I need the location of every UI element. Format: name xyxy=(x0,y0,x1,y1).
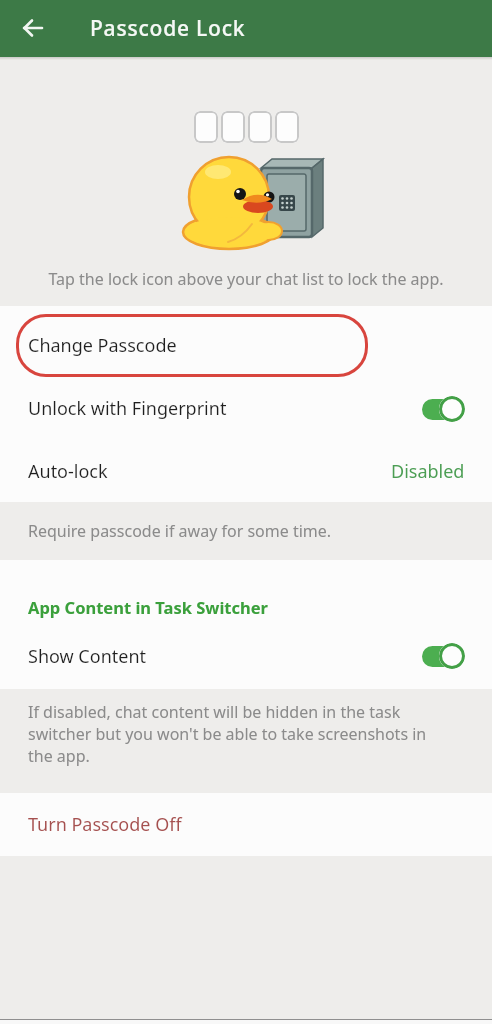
staticText: Auto-lock xyxy=(28,459,108,484)
staticText: If disabled, chat content will be hidden… xyxy=(28,701,427,767)
staticText: Turn Passcode Off xyxy=(28,812,182,837)
button[interactable]: Unlock with Fingerprint xyxy=(0,377,492,440)
button[interactable] xyxy=(422,396,465,422)
staticText: Change Passcode xyxy=(28,333,177,358)
button[interactable]: Change Passcode xyxy=(0,306,492,377)
staticText: App Content in Task Switcher xyxy=(28,596,268,618)
button[interactable] xyxy=(422,643,465,669)
staticText: Disabled xyxy=(391,459,465,484)
staticText: Show Content xyxy=(28,644,147,669)
button[interactable]: Turn Passcode Off xyxy=(0,793,492,856)
button[interactable]: Show Content xyxy=(0,634,492,678)
button[interactable] xyxy=(21,16,45,40)
button[interactable]: Auto-lock xyxy=(0,440,492,502)
staticText: Require passcode if away for some time. xyxy=(28,520,332,542)
staticText: Passcode Lock xyxy=(90,14,246,43)
staticText: Tap the lock icon above your chat list t… xyxy=(0,268,492,290)
staticText: Unlock with Fingerprint xyxy=(28,396,227,421)
